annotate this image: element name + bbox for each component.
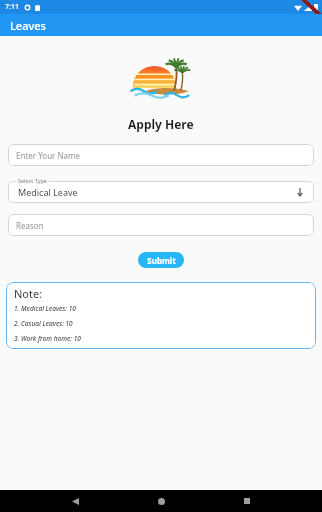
staticText: Reason: [16, 220, 44, 231]
staticText: 7:11: [5, 2, 19, 12]
other: Open leave type dropdown: [296, 188, 304, 196]
staticText: 2. Casual Leaves: 10: [14, 319, 73, 328]
staticText: Enter Your Name: [16, 150, 81, 161]
button[interactable]: Select Type: [8, 177, 314, 203]
staticText: Note:: [14, 286, 43, 301]
button[interactable]: Submit: [138, 252, 184, 268]
staticText: Submit: [147, 255, 176, 266]
button[interactable]: Home: [150, 490, 172, 512]
staticText: Medical Leave: [18, 186, 78, 198]
button[interactable]: Back: [64, 490, 86, 512]
staticText: Leaves: [10, 18, 46, 33]
button[interactable]: Enter Your Name: [8, 144, 314, 166]
staticText: 1. Medical Leaves: 10: [14, 304, 76, 313]
staticText: 3. Work from home: 10: [14, 334, 81, 343]
button[interactable]: Reason: [8, 214, 314, 236]
staticText: Apply Here: [128, 116, 194, 132]
staticText: Select Type: [18, 177, 47, 184]
button[interactable]: Recent apps: [236, 490, 258, 512]
